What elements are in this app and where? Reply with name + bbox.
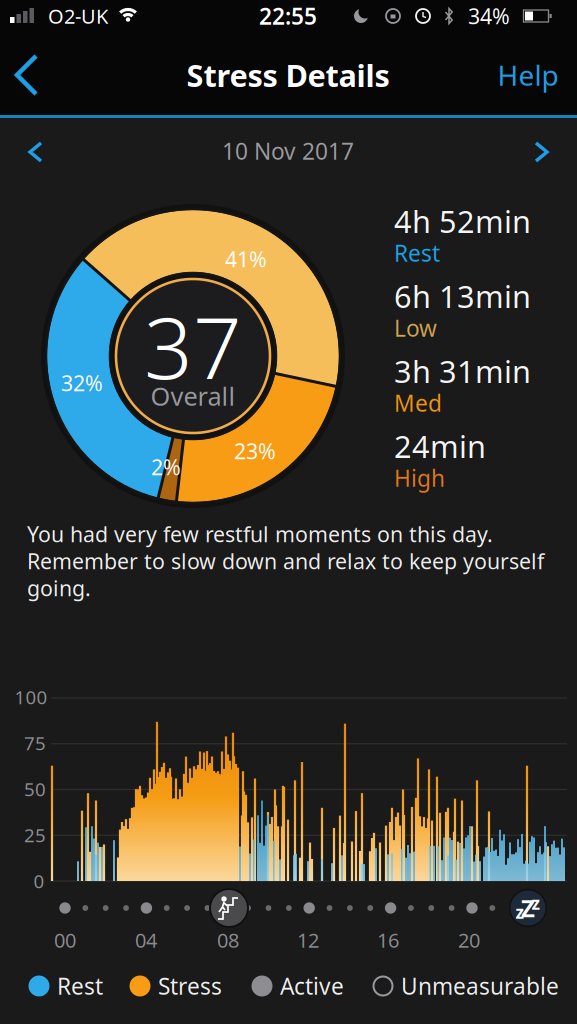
staticText: Help [497, 56, 558, 94]
staticText: Overall [150, 379, 235, 413]
staticText: Rest [394, 238, 440, 268]
staticText: 12 [297, 927, 319, 953]
staticText: 41% [225, 245, 267, 273]
staticText: 6h 13min [394, 276, 531, 316]
staticText: 24min [394, 426, 486, 466]
staticText: 04 [135, 927, 157, 953]
button[interactable]: Next day [525, 136, 557, 168]
staticText: 37 [144, 289, 242, 403]
staticText: z [531, 891, 540, 914]
staticText: 00 [54, 927, 76, 953]
staticText: 100 [14, 685, 47, 709]
staticText: 75 [24, 731, 46, 755]
staticText: 20 [458, 927, 480, 953]
staticText: Stress Details [186, 55, 389, 95]
staticText: Remember to slow down and relax to keep … [27, 547, 544, 575]
staticText: Med [394, 388, 442, 418]
staticText: 23% [234, 437, 276, 465]
button[interactable]: Help [488, 50, 568, 100]
staticText: Z [521, 892, 535, 924]
staticText: z [515, 900, 524, 923]
staticText: 34% [468, 2, 510, 30]
staticText: 08 [217, 927, 239, 953]
staticText: Low [394, 313, 437, 343]
staticText: going. [27, 574, 91, 602]
staticText: 16 [377, 927, 399, 953]
staticText: Active [280, 971, 344, 1001]
staticText: 32% [61, 369, 103, 397]
staticText: 25 [24, 823, 46, 847]
staticText: 0 [33, 869, 44, 893]
staticText: 4h 52min [394, 201, 531, 241]
staticText: 10 Nov 2017 [222, 136, 354, 166]
staticText: O2-UK [48, 3, 108, 29]
button[interactable]: Previous day [20, 136, 52, 168]
staticText: 50 [24, 777, 46, 801]
staticText: You had very few restful moments on this… [27, 520, 493, 548]
staticText: Rest [57, 971, 103, 1001]
staticText: Unmeasurable [401, 971, 559, 1001]
staticText: Stress [158, 971, 222, 1001]
staticText: 22:55 [259, 1, 317, 31]
staticText: 3h 31min [394, 351, 531, 391]
staticText: 2% [151, 453, 181, 481]
button[interactable]: Back [6, 48, 50, 102]
staticText: High [394, 463, 445, 493]
